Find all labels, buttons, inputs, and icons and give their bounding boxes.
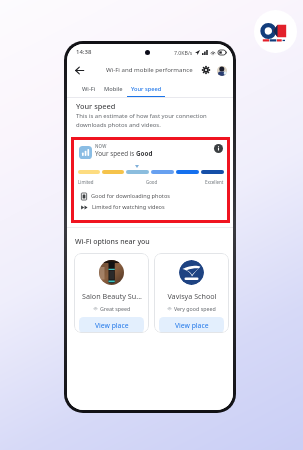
button[interactable]: Back xyxy=(70,61,88,79)
staticText: Mobile xyxy=(104,85,123,93)
staticText: This is an estimate of how fast your con… xyxy=(76,112,207,128)
staticText: View place xyxy=(175,321,209,330)
staticText: Great speed xyxy=(100,305,131,312)
staticText: Vavisya School xyxy=(167,291,217,301)
staticText: Wi-Fi xyxy=(82,85,96,93)
staticText: Very good speed xyxy=(174,305,216,312)
staticText: Your speed xyxy=(76,101,116,111)
staticText: Limited for watching videos xyxy=(92,203,165,211)
staticText: Your speed is xyxy=(95,149,136,158)
button[interactable]: Mobile xyxy=(99,79,128,98)
staticText: Limited xyxy=(78,179,94,185)
button[interactable]: Info xyxy=(213,143,224,154)
button[interactable]: Wi-Fi xyxy=(76,79,101,98)
button[interactable]: Settings xyxy=(198,62,214,78)
staticText: 7.0KB/s xyxy=(174,49,193,56)
staticText: Good for downloading photos xyxy=(91,192,170,200)
button[interactable]: NOW xyxy=(71,137,230,223)
staticText: Salon Beauty Su... xyxy=(82,291,142,301)
button[interactable]: Your speed xyxy=(127,79,165,98)
button[interactable]: Salon Beauty Su... xyxy=(74,253,149,333)
staticText: Good xyxy=(136,149,153,158)
staticText: Your speed xyxy=(131,85,162,93)
button[interactable]: View place xyxy=(159,317,224,333)
button[interactable]: View place xyxy=(79,317,144,333)
staticText: Wi-Fi and mobile performance xyxy=(106,65,193,73)
staticText: Good xyxy=(146,179,158,185)
staticText: View place xyxy=(95,321,129,330)
button[interactable]: Vavisya School xyxy=(154,253,229,333)
staticText: NOW xyxy=(95,143,107,149)
staticText: Excellent xyxy=(205,179,224,185)
staticText: 14:38 xyxy=(76,48,92,56)
button[interactable]: Account xyxy=(214,63,229,78)
staticText: Wi-Fi options near you xyxy=(75,237,150,247)
